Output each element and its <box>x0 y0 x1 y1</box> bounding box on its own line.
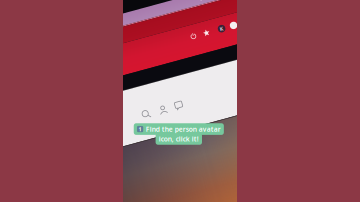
staticText: 1 <box>139 125 142 133</box>
staticText: icon, click it! <box>159 134 199 143</box>
staticText: Find the person avatar <box>146 125 221 133</box>
